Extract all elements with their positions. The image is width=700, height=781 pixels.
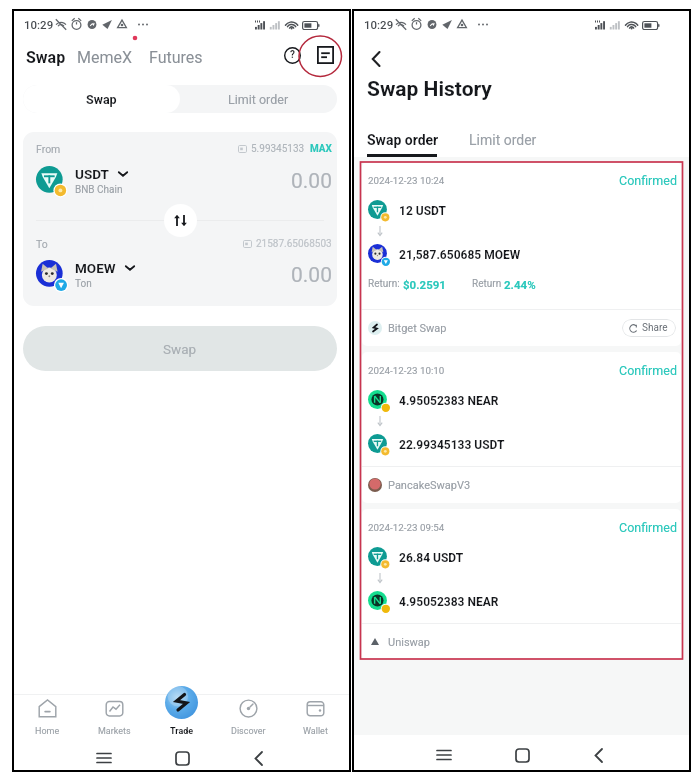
- staticText: Limit order: [469, 132, 537, 148]
- button[interactable]: Swap: [23, 326, 337, 371]
- staticText: PancakeSwapV3: [388, 479, 471, 492]
- button[interactable]: Recents: [432, 743, 456, 767]
- staticText: Wallet: [303, 726, 328, 737]
- staticText: 21587.65068503: [256, 238, 332, 250]
- button[interactable]: Swap order: [367, 132, 439, 148]
- button[interactable]: Limit order: [180, 85, 337, 113]
- staticText: 4.95052383 NEAR: [399, 394, 499, 408]
- staticText: Swap order: [367, 132, 439, 148]
- button[interactable]: MAX: [310, 143, 332, 155]
- staticText: 0.00: [291, 263, 332, 288]
- staticText: USDT: [75, 166, 109, 182]
- button[interactable]: Back: [362, 45, 390, 73]
- button[interactable]: Order history: [312, 42, 338, 68]
- button[interactable]: Swap: [26, 44, 66, 70]
- button[interactable]: Back: [587, 743, 611, 767]
- staticText: 21,587.650685 MOEW: [399, 248, 521, 262]
- staticText: Confirmed: [619, 173, 677, 187]
- staticText: 12 USDT: [399, 204, 446, 218]
- staticText: Ton: [75, 278, 92, 290]
- button[interactable]: Futures: [149, 44, 203, 70]
- staticText: 2024-12-23 10:24: [368, 175, 445, 186]
- staticText: Limit order: [228, 92, 289, 107]
- staticText: 10:29: [24, 18, 54, 31]
- staticText: From: [36, 143, 61, 155]
- staticText: Trade: [170, 726, 194, 737]
- staticText: Swap: [163, 341, 197, 357]
- button[interactable]: Discover: [215, 694, 282, 745]
- button[interactable]: Help: [279, 42, 305, 68]
- staticText: Bitget Swap: [388, 322, 447, 335]
- button[interactable]: Switch tokens: [164, 204, 197, 237]
- button[interactable]: MemeX: [77, 44, 132, 70]
- staticText: 2.44%: [504, 278, 536, 291]
- staticText: 26.84 USDT: [399, 551, 464, 565]
- staticText: Markets: [98, 726, 131, 737]
- button[interactable]: Home: [510, 743, 534, 767]
- staticText: Home: [35, 726, 60, 737]
- button[interactable]: Markets: [81, 694, 148, 745]
- staticText: 22.99345133 USDT: [399, 438, 505, 452]
- button[interactable]: 2024-12-23 10:10: [362, 352, 681, 503]
- staticText: Confirmed: [619, 363, 677, 377]
- staticText: 2024-12-23 10:10: [368, 365, 445, 376]
- staticText: Return:: [368, 278, 403, 290]
- staticText: $0.2591: [403, 278, 446, 291]
- staticText: Discover: [231, 726, 266, 737]
- staticText: Uniswap: [388, 636, 430, 649]
- button[interactable]: Swap: [23, 85, 180, 113]
- staticText: MemeX: [77, 48, 132, 67]
- staticText: 4.95052383 NEAR: [399, 595, 499, 609]
- button[interactable]: 2024-12-23 10:24: [362, 162, 681, 346]
- staticText: Confirmed: [619, 520, 677, 534]
- staticText: 0.00: [291, 169, 332, 194]
- button[interactable]: Limit order: [469, 132, 537, 148]
- staticText: Return: [472, 278, 504, 290]
- staticText: MAX: [310, 143, 332, 155]
- staticText: To: [36, 238, 48, 250]
- button[interactable]: Home: [14, 694, 81, 745]
- staticText: Swap: [86, 92, 117, 107]
- staticText: BNB Chain: [75, 184, 123, 196]
- button[interactable]: Home: [170, 746, 194, 770]
- button[interactable]: Share: [622, 319, 676, 337]
- staticText: 5.99345133: [251, 143, 305, 155]
- staticText: Swap History: [367, 77, 492, 102]
- staticText: ?: [290, 49, 295, 61]
- staticText: 2024-12-23 09:54: [368, 522, 445, 533]
- button[interactable]: 2024-12-23 09:54: [362, 509, 681, 660]
- staticText: Share: [642, 322, 668, 334]
- staticText: Swap: [26, 48, 66, 67]
- staticText: 10:29: [364, 18, 394, 31]
- button[interactable]: Wallet: [282, 694, 349, 745]
- button[interactable]: Trade: [148, 694, 215, 745]
- button[interactable]: Back: [247, 746, 271, 770]
- staticText: MOEW: [75, 260, 116, 276]
- staticText: Futures: [149, 48, 203, 67]
- button[interactable]: Recents: [92, 746, 116, 770]
